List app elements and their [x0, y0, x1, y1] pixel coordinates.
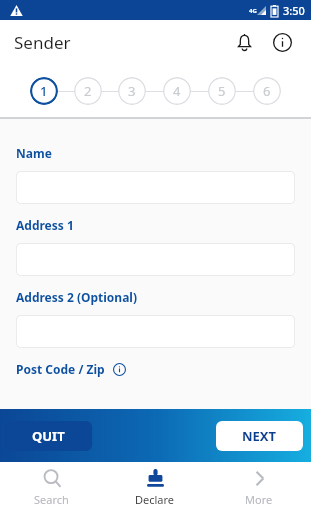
- button[interactable]: More: [207, 462, 311, 512]
- button[interactable]: Post code information: [111, 361, 127, 377]
- button[interactable]: [16, 315, 295, 348]
- staticText: 3: [128, 82, 136, 100]
- staticText: Declare: [135, 492, 175, 507]
- staticText: Name: [16, 145, 52, 161]
- button[interactable]: NEXT: [216, 421, 303, 451]
- staticText: 4: [173, 82, 181, 100]
- staticText: Address 2 (Optional): [16, 289, 137, 305]
- button[interactable]: 4: [163, 77, 191, 105]
- staticText: 1: [40, 82, 48, 100]
- button[interactable]: [16, 171, 295, 204]
- button[interactable]: 6: [253, 77, 281, 105]
- staticText: 6: [263, 82, 271, 100]
- staticText: 3:50: [283, 3, 305, 18]
- staticText: 4G: [249, 7, 257, 15]
- staticText: Address 1: [16, 217, 74, 233]
- button[interactable]: 3: [118, 77, 146, 105]
- button[interactable]: Declare: [103, 462, 207, 512]
- staticText: Post Code / Zip: [16, 361, 105, 377]
- button[interactable]: Notifications: [229, 27, 259, 57]
- staticText: Sender: [14, 31, 71, 54]
- button[interactable]: QUIT: [4, 421, 92, 451]
- button[interactable]: 1: [30, 77, 58, 105]
- button[interactable]: Search: [0, 462, 103, 512]
- staticText: Search: [34, 492, 69, 507]
- staticText: QUIT: [32, 427, 65, 445]
- staticText: 5: [218, 82, 226, 100]
- button[interactable]: 2: [74, 77, 102, 105]
- button[interactable]: [16, 243, 295, 276]
- staticText: 2: [84, 82, 92, 100]
- staticText: NEXT: [242, 427, 277, 445]
- button[interactable]: Information: [267, 27, 297, 57]
- button[interactable]: 5: [208, 77, 236, 105]
- staticText: More: [245, 492, 273, 507]
